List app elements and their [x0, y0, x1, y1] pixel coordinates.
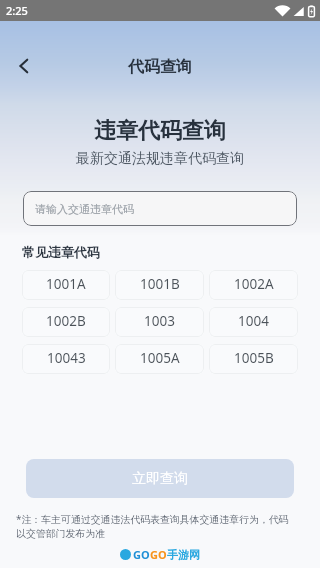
staticText: 1001B	[140, 275, 180, 293]
staticText: 常见违章代码	[22, 244, 100, 260]
button[interactable]: 1001B	[115, 270, 204, 300]
button[interactable]: 1004	[209, 307, 298, 337]
staticText: 2:25	[6, 3, 28, 18]
staticText: *注：车主可通过交通违法代码表查询具体交通违章行为，代码以交管部门发布为准	[16, 512, 298, 540]
button[interactable]: 10043	[22, 344, 110, 374]
button[interactable]: 请输入交通违章代码	[23, 191, 297, 226]
button[interactable]: 1005B	[209, 344, 298, 374]
staticText: 1005A	[140, 349, 180, 367]
staticText: GO	[133, 547, 150, 562]
staticText: GO	[150, 547, 167, 562]
staticText: 代码查询	[128, 57, 192, 77]
staticText: 10043	[47, 349, 86, 367]
staticText: 1003	[144, 312, 175, 330]
button[interactable]: 1002A	[209, 270, 298, 300]
staticText: 违章代码查询	[0, 117, 320, 145]
staticText: 1002B	[46, 312, 86, 330]
button[interactable]: 立即查询	[26, 459, 294, 498]
staticText: 1001A	[46, 275, 86, 293]
button[interactable]: 1003	[115, 307, 204, 337]
button[interactable]: Back	[0, 44, 46, 90]
staticText: 最新交通法规违章代码查询	[0, 150, 320, 168]
button[interactable]: 1002B	[22, 307, 110, 337]
staticText: 立即查询	[132, 470, 188, 488]
staticText: 手游网	[167, 548, 200, 562]
staticText: 请输入交通违章代码	[35, 202, 134, 216]
staticText: 1005B	[234, 349, 274, 367]
button[interactable]: 1005A	[115, 344, 204, 374]
staticText: 1002A	[234, 275, 274, 293]
button[interactable]: 1001A	[22, 270, 110, 300]
staticText: 1004	[238, 312, 269, 330]
